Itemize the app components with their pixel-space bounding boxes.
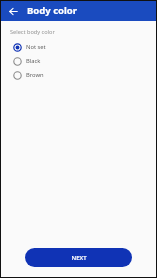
- staticText: Body color: [27, 4, 78, 17]
- staticText: Black: [26, 57, 41, 65]
- button[interactable]: NEXT: [25, 248, 132, 267]
- staticText: Not set: [26, 43, 46, 51]
- staticText: Select body color: [10, 28, 55, 36]
- staticText: Brown: [26, 71, 44, 79]
- button[interactable]: Not set: [0, 40, 157, 54]
- button[interactable]: Black: [0, 54, 157, 68]
- staticText: NEXT: [71, 254, 87, 262]
- button[interactable]: Navigate up: [5, 3, 21, 19]
- button[interactable]: Brown: [0, 68, 157, 82]
